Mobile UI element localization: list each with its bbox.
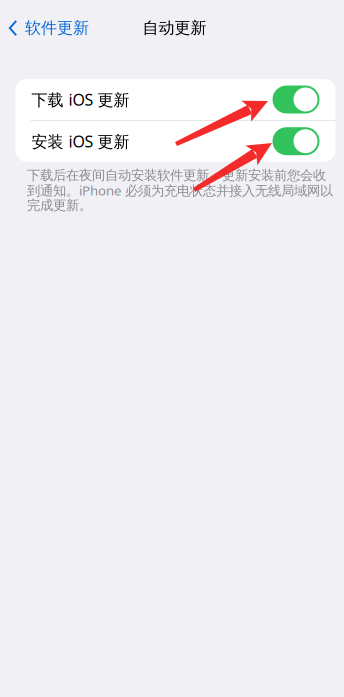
staticText: 自动更新: [142, 18, 206, 38]
button[interactable]: 安装 iOS 更新: [15, 121, 335, 162]
staticText: 安装 iOS 更新: [31, 131, 129, 152]
button[interactable]: 下载 iOS 更新: [15, 79, 335, 120]
staticText: 下载后在夜间自动安装软件更新。更新安装前您会收: [27, 167, 326, 183]
staticText: 到通知。iPhone 必须为充电状态并接入无线局域网以: [27, 181, 333, 199]
staticText: 软件更新: [25, 18, 89, 38]
button[interactable]: 软件更新: [8, 11, 128, 45]
staticText: 下载 iOS 更新: [31, 89, 129, 110]
staticText: 完成更新。: [27, 197, 92, 213]
